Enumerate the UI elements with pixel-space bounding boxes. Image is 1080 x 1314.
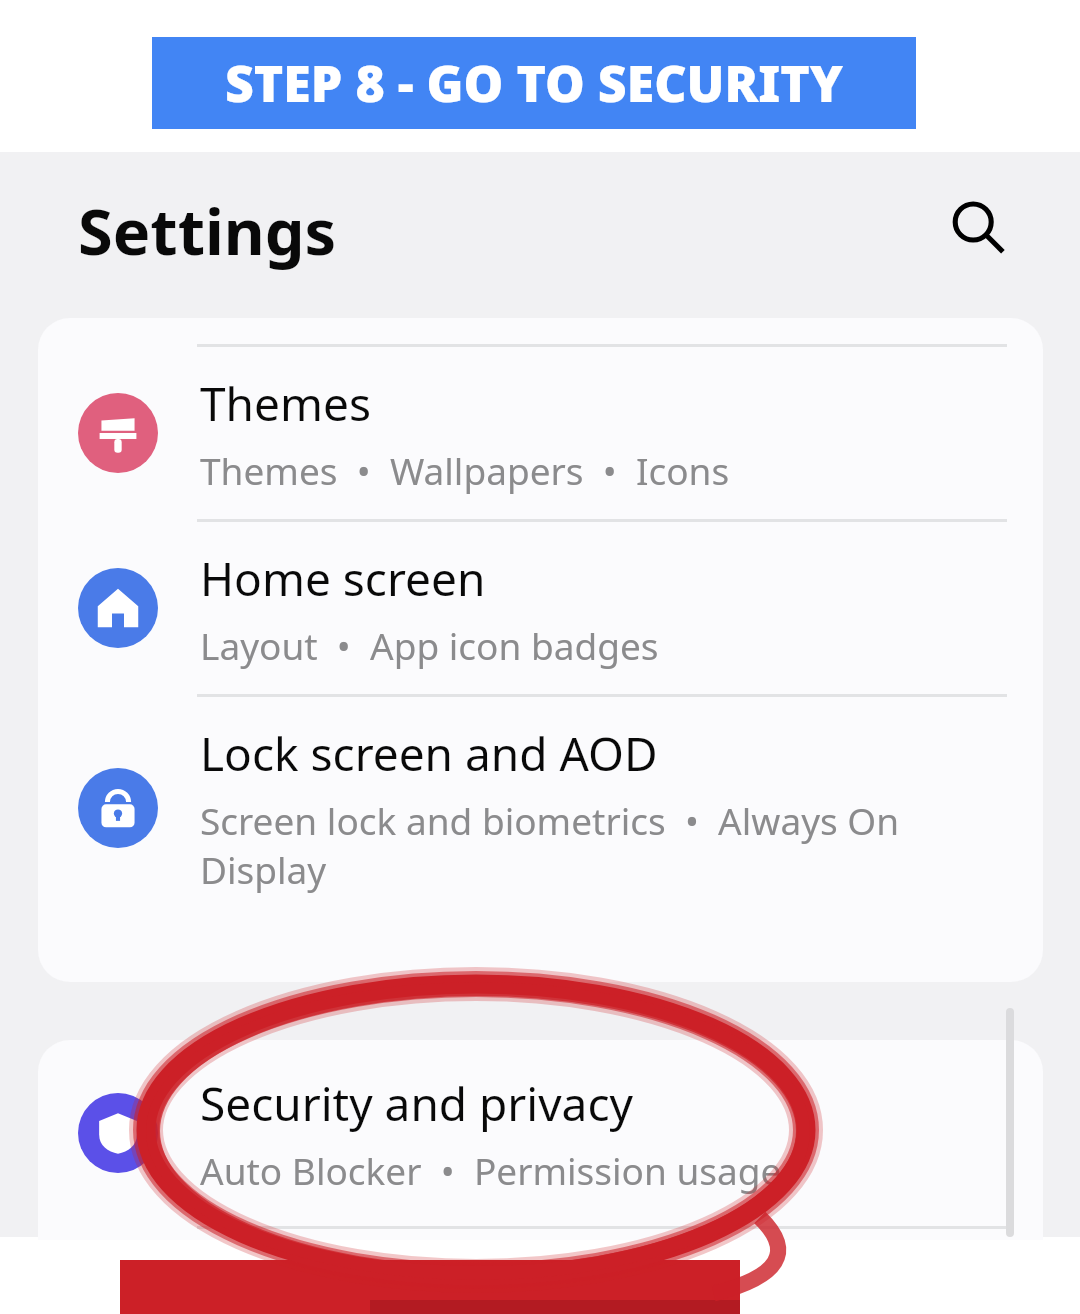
staticText: Layout • App icon badges bbox=[200, 620, 659, 670]
button[interactable]: Lock screen and AOD bbox=[38, 697, 1043, 919]
staticText: Themes • Wallpapers • Icons bbox=[200, 445, 730, 495]
staticText: Home screen bbox=[200, 547, 486, 610]
button[interactable]: Search bbox=[930, 180, 1026, 276]
button[interactable]: Home screen bbox=[38, 522, 1043, 694]
staticText: Settings bbox=[78, 188, 337, 274]
staticText: Themes bbox=[200, 372, 371, 435]
staticText: Screen lock and biometrics • Always On D… bbox=[200, 795, 1003, 895]
staticText: STEP 8 - GO TO SECURITY SETTINGS bbox=[152, 49, 916, 117]
staticText: Auto Blocker • Permission usage bbox=[200, 1145, 782, 1195]
button[interactable]: Themes bbox=[38, 347, 1043, 519]
button[interactable]: Security and privacy bbox=[38, 1040, 1043, 1226]
staticText: Lock screen and AOD bbox=[200, 722, 658, 785]
staticText: Security and privacy bbox=[200, 1072, 633, 1135]
